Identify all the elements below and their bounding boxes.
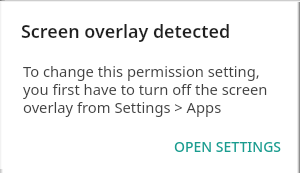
staticText: Screen overlay detected	[21, 19, 231, 43]
staticText: OPEN SETTINGS	[174, 137, 282, 156]
staticText: To change this permission setting, you f…	[23, 61, 268, 117]
button[interactable]: OPEN SETTINGS	[166, 129, 290, 164]
